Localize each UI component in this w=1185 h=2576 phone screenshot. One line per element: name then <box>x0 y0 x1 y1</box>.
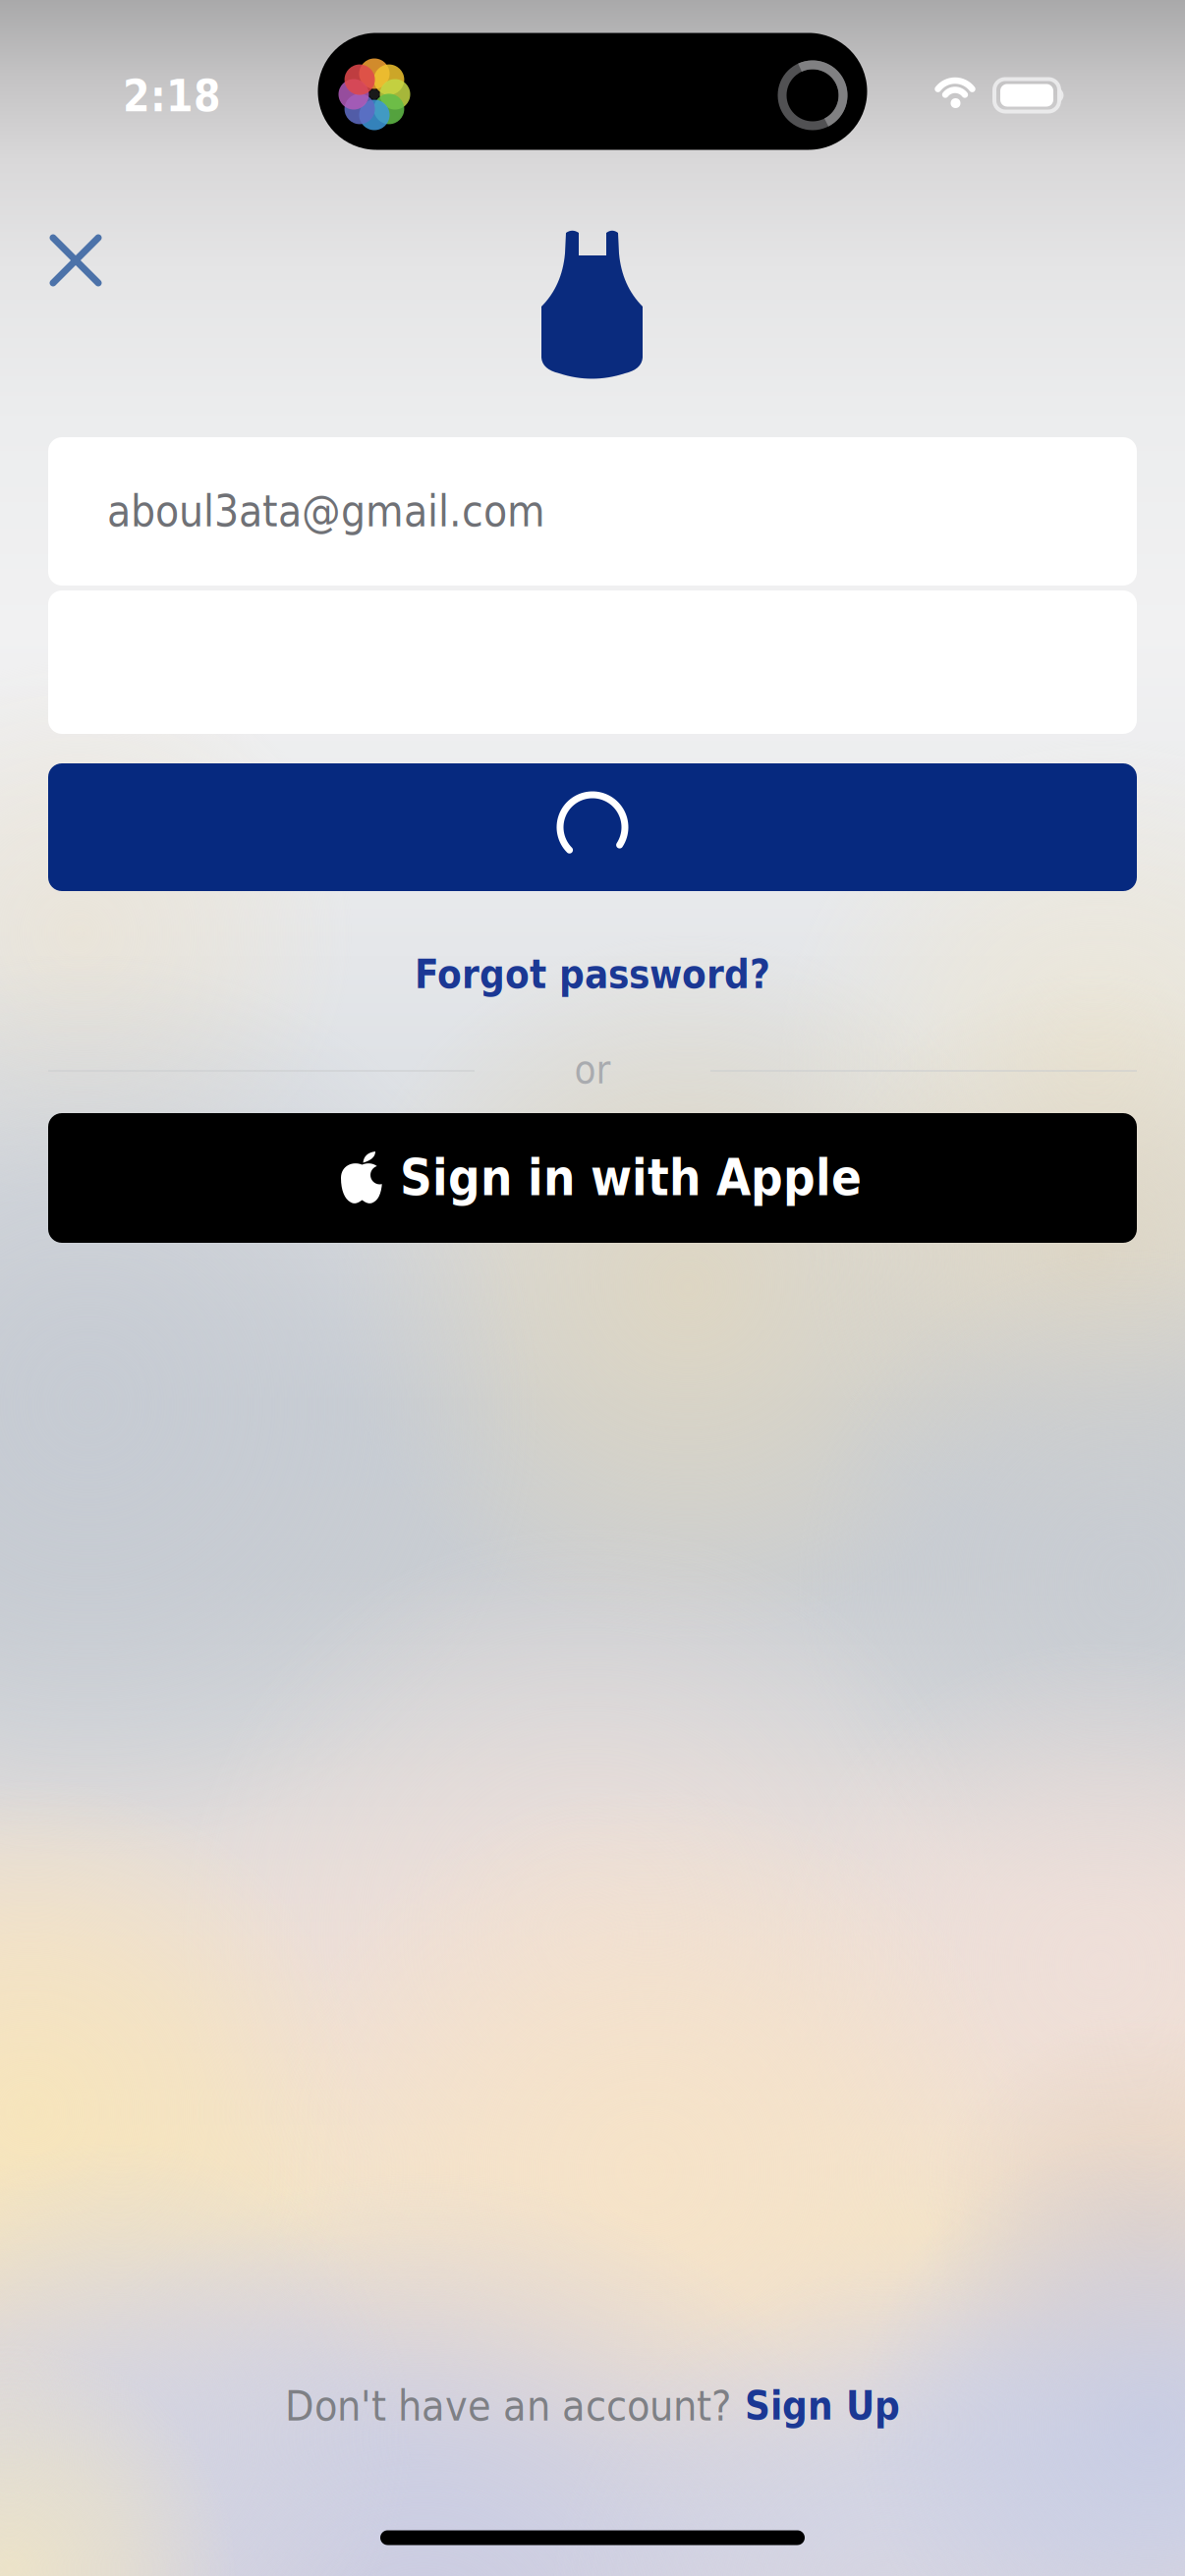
button[interactable]: Sign in with Apple <box>48 1113 1137 1243</box>
staticText: Sign in with Apple <box>400 1149 862 1207</box>
staticText: 2:18 <box>123 71 221 121</box>
staticText: Forgot password? <box>415 952 770 997</box>
button[interactable]: Forgot password? <box>415 952 770 997</box>
staticText: Don't have an account? <box>285 2382 731 2430</box>
button[interactable]: Sign In <box>48 763 1137 891</box>
staticText: Sign Up <box>745 2383 900 2429</box>
button[interactable]: Email <box>48 437 1137 586</box>
button[interactable]: Don't have an account? <box>285 2382 900 2430</box>
button[interactable]: Close <box>49 234 102 287</box>
staticText: aboul3ata@gmail.com <box>107 486 545 537</box>
staticText: or <box>574 1047 611 1093</box>
